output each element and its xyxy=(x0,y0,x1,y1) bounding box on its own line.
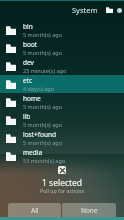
button[interactable]: Close selection xyxy=(58,166,66,174)
button[interactable]: etc xyxy=(0,75,124,93)
staticText: 25 minute(s) ago xyxy=(23,67,67,74)
staticText: 1 selected xyxy=(42,177,83,189)
staticText: lib xyxy=(23,112,31,121)
button[interactable]: All xyxy=(8,203,61,218)
button[interactable]: dev xyxy=(0,57,124,75)
staticText: 4 day(s) ago xyxy=(23,85,55,92)
staticText: media xyxy=(23,148,43,157)
staticText: System xyxy=(72,5,98,15)
button[interactable]: lost+found xyxy=(0,129,124,147)
staticText: All xyxy=(31,206,39,215)
button[interactable]: lib xyxy=(0,111,124,129)
button[interactable]: New folder xyxy=(104,5,114,15)
staticText: 5 month(s) ago xyxy=(23,139,62,146)
button[interactable]: None xyxy=(62,203,116,218)
staticText: 53 month(s) ago xyxy=(23,157,66,164)
staticText: None xyxy=(81,206,98,215)
button[interactable]: boot xyxy=(0,39,124,57)
staticText: etc xyxy=(23,76,33,85)
staticText: 5 month(s) ago xyxy=(23,49,62,56)
staticText: 5 month(s) ago xyxy=(23,103,62,110)
button[interactable]: home xyxy=(0,93,124,111)
staticText: Pull up for actions xyxy=(40,187,84,194)
staticText: 5 month(s) ago xyxy=(23,121,62,128)
staticText: dev xyxy=(23,58,34,67)
button[interactable]: media xyxy=(0,147,124,165)
staticText: 5 month(s) ago xyxy=(23,31,62,38)
button[interactable]: More options xyxy=(114,5,124,15)
staticText: bin xyxy=(23,22,33,31)
staticText: lost+found xyxy=(23,130,56,139)
button[interactable]: bin xyxy=(0,21,124,39)
staticText: boot xyxy=(23,40,38,49)
staticText: home xyxy=(23,94,41,103)
